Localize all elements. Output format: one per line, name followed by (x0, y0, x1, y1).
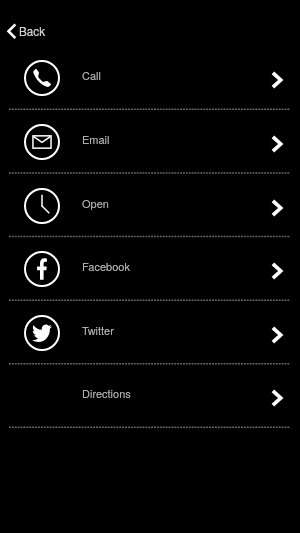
staticText: Email (82, 131, 110, 147)
button[interactable]: Twitter (0, 300, 300, 364)
button[interactable]: Facebook (0, 236, 300, 300)
button[interactable]: Email (0, 109, 300, 173)
button[interactable]: Open (0, 173, 300, 237)
staticText: Open (82, 195, 109, 211)
staticText: Facebook (82, 258, 130, 274)
button[interactable]: Call (0, 45, 300, 109)
staticText: Back (19, 23, 46, 40)
staticText: Call (82, 67, 101, 83)
staticText: Directions (82, 385, 131, 401)
button[interactable]: Directions (0, 363, 300, 427)
button[interactable]: Back (0, 0, 300, 45)
staticText: Twitter (82, 322, 114, 338)
